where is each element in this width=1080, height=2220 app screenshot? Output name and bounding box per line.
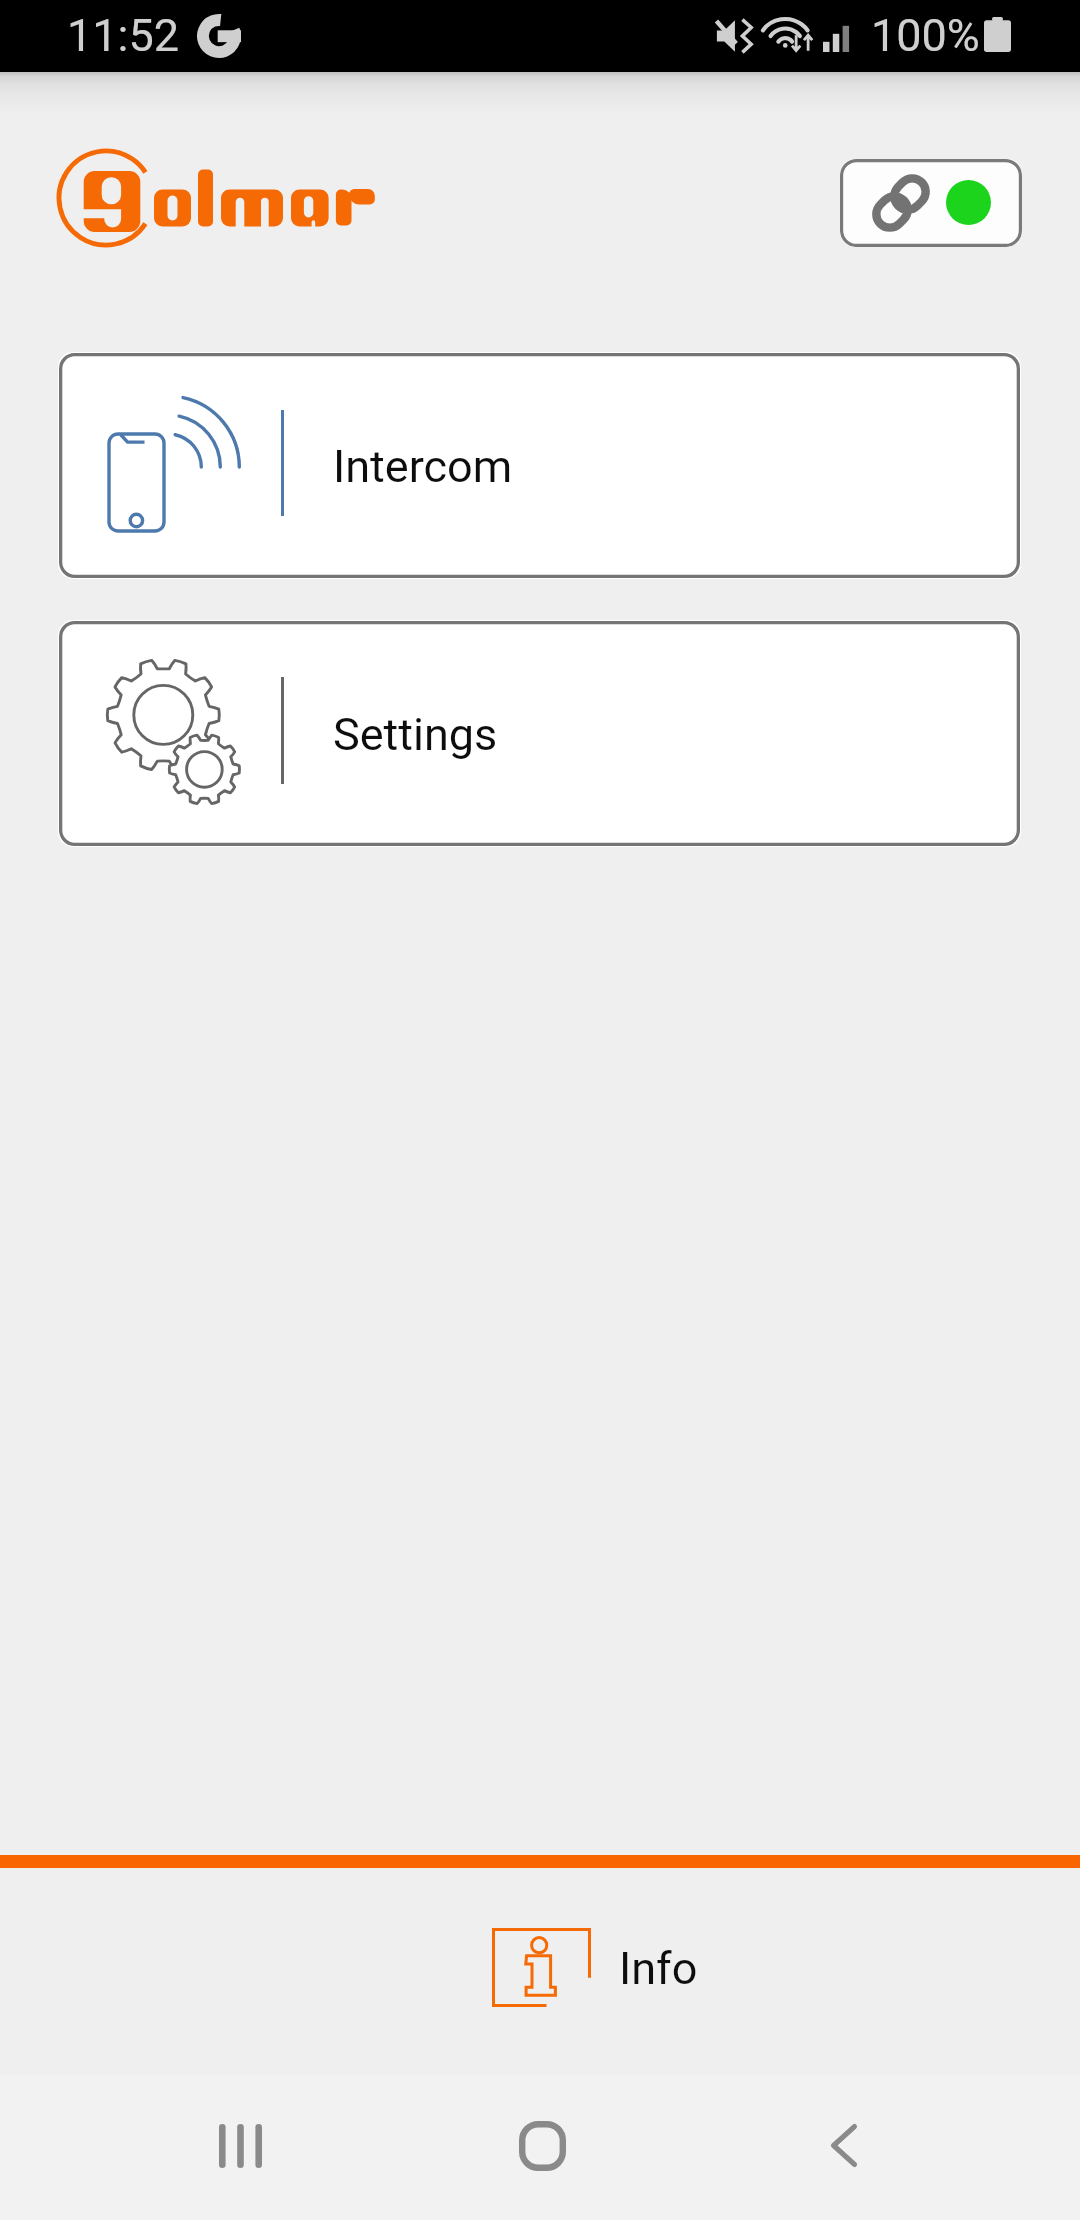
staticText: Settings <box>333 708 498 761</box>
staticText: 100% <box>871 9 980 62</box>
staticText: Info <box>619 1942 698 1995</box>
button[interactable]: Back <box>788 2092 898 2202</box>
button[interactable]: Intercom <box>58 352 1021 579</box>
button[interactable]: Recents <box>184 2092 294 2202</box>
button[interactable]: Info <box>470 1916 720 2020</box>
staticText: Intercom <box>333 440 513 493</box>
button[interactable]: Connection status <box>840 159 1022 247</box>
button[interactable]: Home <box>487 2092 597 2202</box>
staticText: 11:52 <box>67 9 180 62</box>
button[interactable]: Settings <box>58 620 1021 847</box>
